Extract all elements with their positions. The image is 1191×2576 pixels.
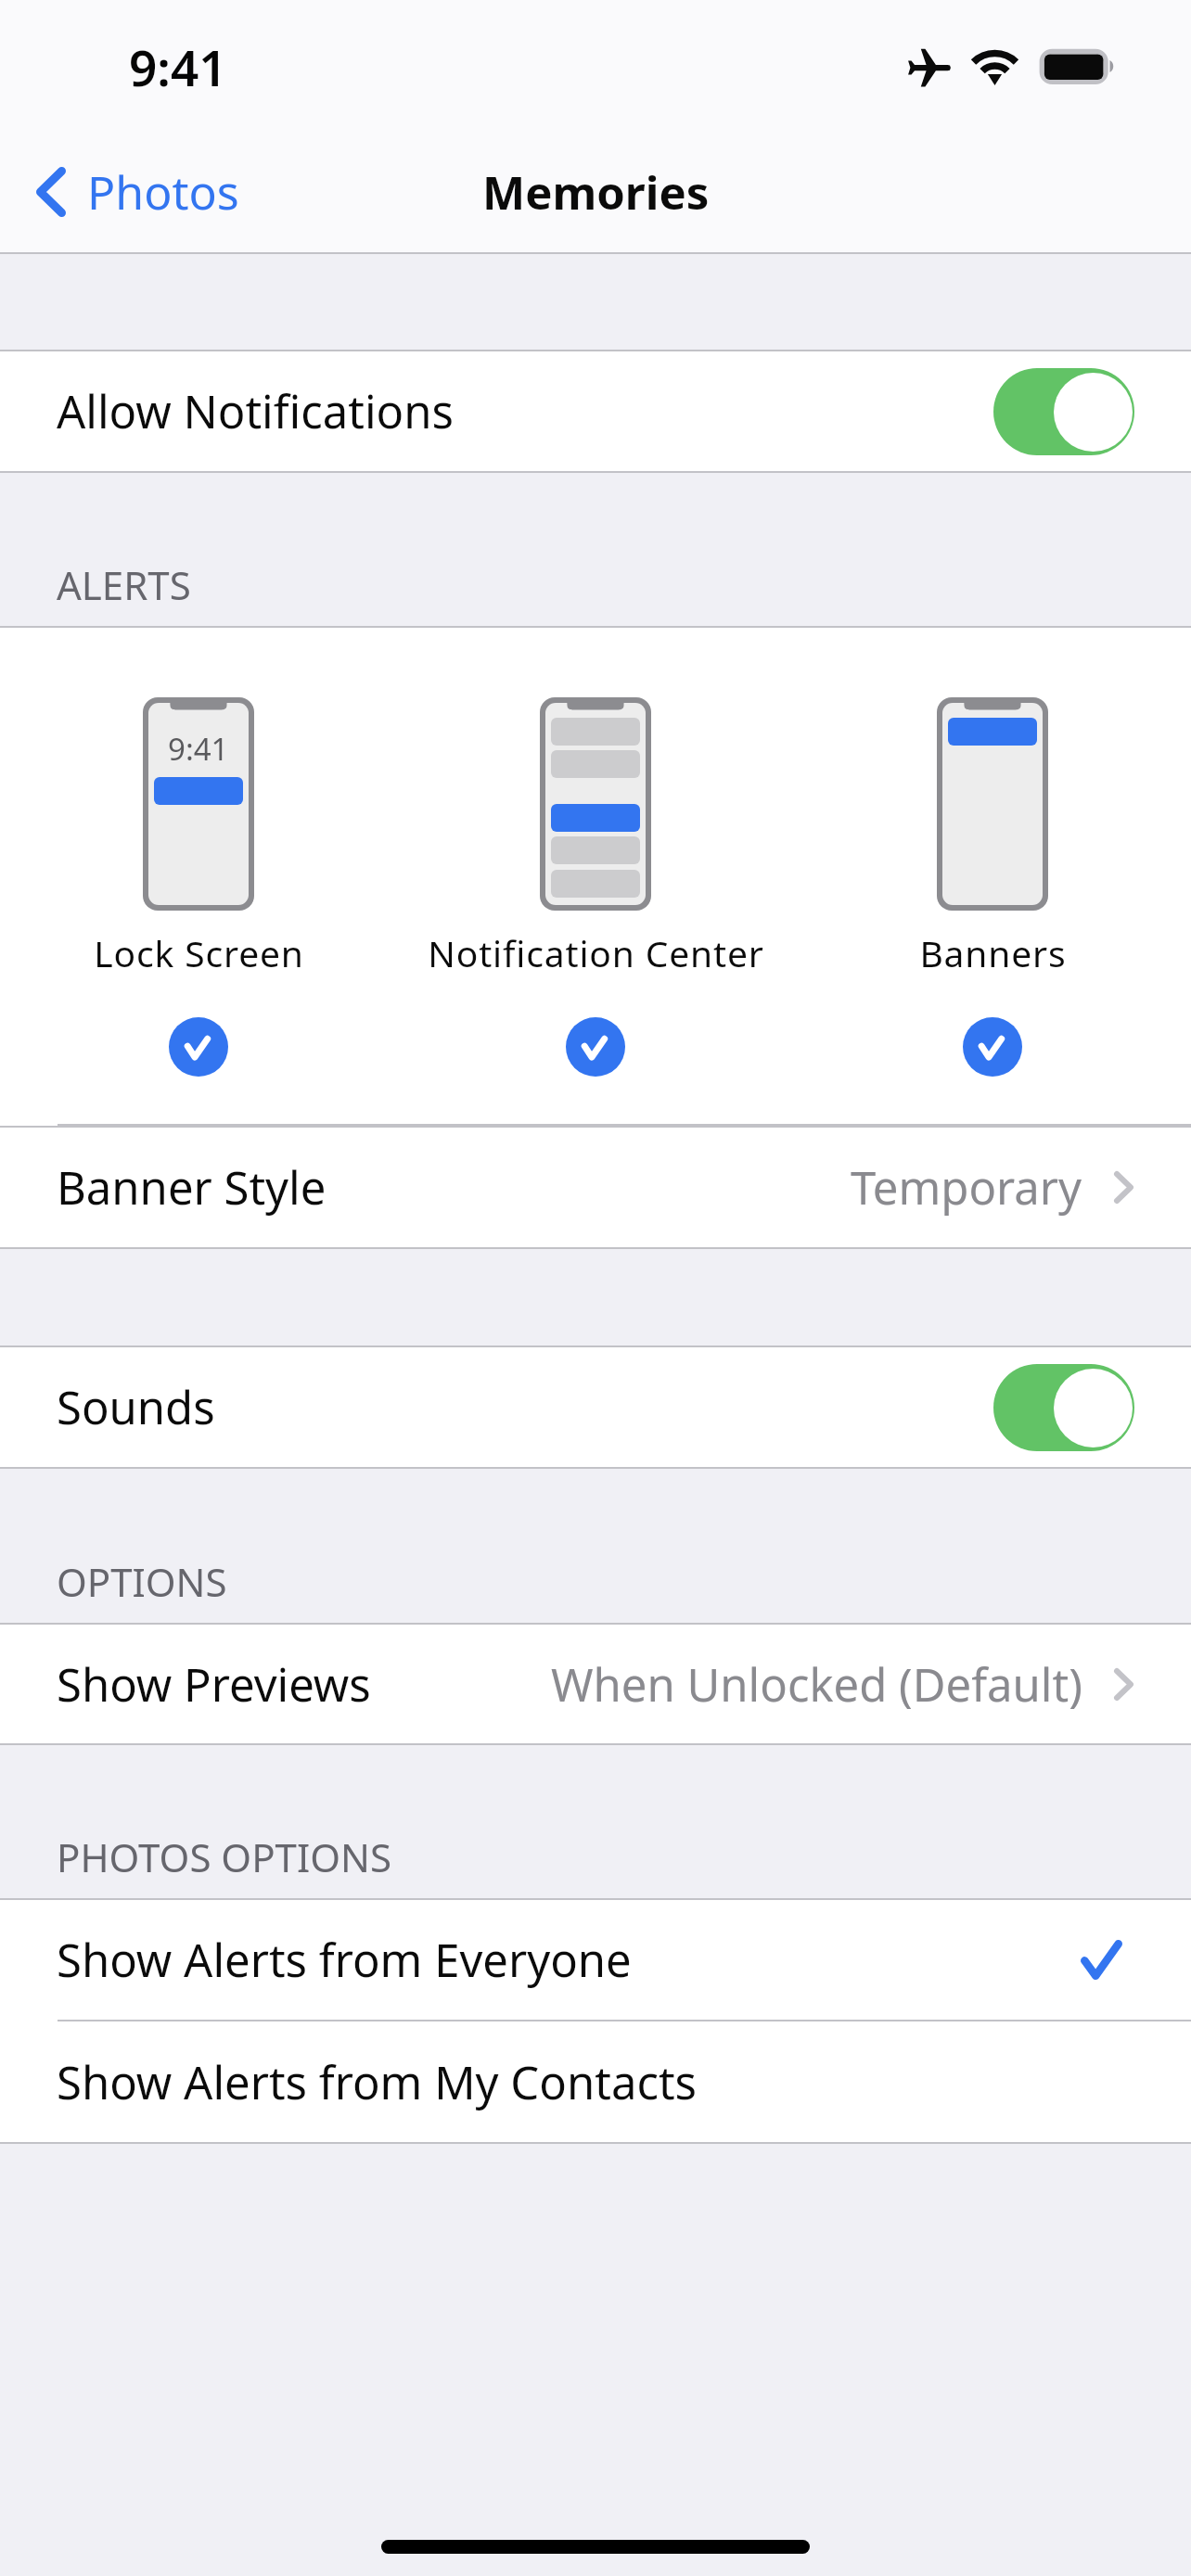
staticText: Banner Style [57,1156,327,1218]
staticText: Photos [87,160,239,223]
staticText: Banners [919,928,1067,977]
button[interactable]: Back to Photos [0,136,256,248]
staticText: Sounds [57,1376,215,1438]
staticText: Allow Notifications [57,380,454,442]
other: Enabled [963,1017,1022,1077]
staticText: 9:41 [129,33,227,100]
staticText: Show Alerts from My Contacts [57,2051,698,2113]
staticText: Show Previews [57,1653,371,1715]
staticText: PHOTOS OPTIONS [57,1830,391,1883]
button[interactable]: Banners [794,628,1191,1126]
button[interactable]: Allow Notifications [0,351,1191,471]
button[interactable]: Show Previews [0,1625,1191,1743]
other: Open [1114,1668,1133,1701]
staticText: Temporary [851,1156,1082,1218]
staticText: OPTIONS [57,1555,227,1608]
button[interactable]: Banner Style [0,1128,1191,1247]
other: Enabled [169,1017,228,1077]
staticText: Notification Center [428,928,764,977]
button[interactable]: Sounds [0,1347,1191,1467]
button[interactable]: Notification Center [397,628,794,1126]
staticText: Memories [482,161,710,223]
staticText: Show Alerts from Everyone [57,1929,632,1991]
other: Enabled [566,1017,625,1077]
staticText: When Unlocked (Default) [551,1653,1082,1715]
button[interactable]: Allow Notifications on [993,368,1134,455]
other: Open [1114,1171,1133,1204]
button[interactable]: Show Alerts from Everyone [0,1900,1191,2020]
button[interactable]: Show Alerts from My Contacts [0,2021,1191,2142]
button[interactable]: Sounds on [993,1364,1134,1451]
staticText: ALERTS [57,558,191,611]
staticText: Lock Screen [94,928,304,977]
button[interactable]: Lock Screen [0,628,397,1126]
